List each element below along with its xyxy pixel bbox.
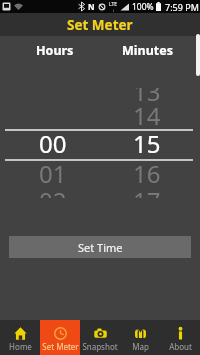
button[interactable]: Hours — [24, 39, 85, 62]
button[interactable]: 01 — [23, 157, 83, 189]
staticText: Set Meter — [42, 341, 79, 352]
button[interactable]: 13 — [117, 88, 177, 107]
staticText: 14 — [133, 99, 161, 131]
button[interactable]: Minutes — [115, 39, 179, 62]
staticText: 15 — [133, 127, 161, 159]
button[interactable]: 17 — [117, 184, 177, 198]
button[interactable]: Home — [0, 320, 40, 355]
staticText: 100% — [132, 1, 154, 13]
staticText: Home — [9, 341, 32, 352]
staticText: 02 — [39, 184, 67, 198]
staticText: N — [88, 1, 95, 12]
button[interactable]: Map — [120, 320, 160, 355]
button[interactable]: 16 — [117, 157, 177, 189]
staticText: 00 — [39, 127, 67, 159]
staticText: 01 — [39, 157, 67, 189]
button[interactable]: Set Meter — [40, 320, 80, 355]
staticText: 13 — [133, 88, 161, 107]
staticText: ⁞ — [113, 8, 115, 13]
staticText: Hours — [36, 42, 74, 59]
staticText: 17 — [133, 184, 161, 198]
staticText: 16 — [133, 157, 161, 189]
button[interactable]: 00 — [23, 127, 83, 159]
staticText: Snapshot — [82, 341, 118, 352]
staticText: Set Time — [78, 240, 123, 255]
button[interactable]: About — [160, 320, 200, 355]
staticText: Minutes — [122, 42, 173, 59]
staticText: Set Meter — [67, 16, 133, 34]
button[interactable]: 15 — [117, 127, 177, 159]
button[interactable]: 02 — [23, 184, 83, 198]
button[interactable]: Set Time — [9, 236, 191, 258]
staticText: 7:59 PM — [165, 1, 199, 13]
staticText: Map — [132, 341, 149, 352]
staticText: LTE — [109, 1, 118, 8]
button[interactable]: Snapshot — [80, 320, 120, 355]
button[interactable]: 14 — [117, 99, 177, 131]
staticText: About — [169, 341, 192, 352]
